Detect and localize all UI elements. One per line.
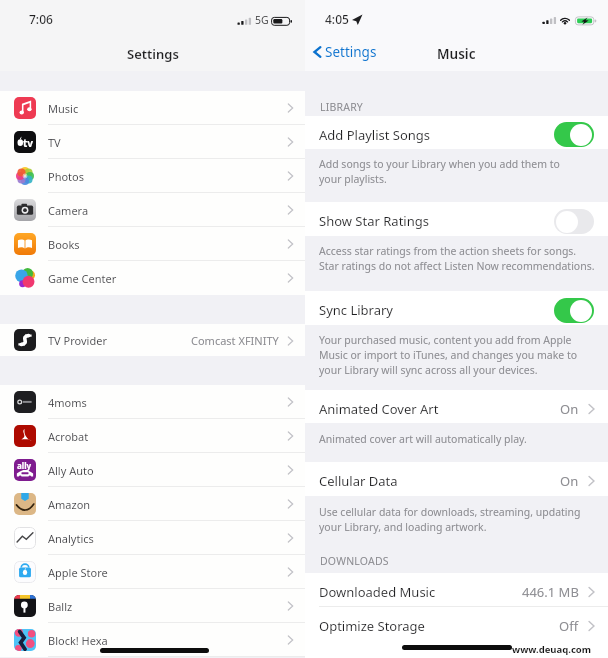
staticText: ally	[17, 460, 32, 471]
button[interactable]: TV Provider	[0, 324, 305, 356]
button[interactable]: Photos	[0, 159, 305, 193]
button[interactable]: Sync Library	[305, 291, 608, 325]
staticText: Music	[437, 45, 476, 63]
staticText: Sync Library	[319, 301, 393, 319]
button[interactable]: Switch on	[554, 122, 594, 147]
staticText: Off	[559, 617, 579, 635]
staticText: Acrobat	[48, 429, 89, 444]
staticText: tv	[23, 136, 34, 150]
staticText: Ballz	[48, 599, 73, 614]
button[interactable]: Downloaded Music	[305, 573, 608, 607]
button[interactable]: Game Center	[0, 261, 305, 295]
staticText: Analytics	[48, 531, 94, 546]
button[interactable]: Ballz	[0, 589, 305, 623]
staticText: Amazon	[48, 497, 91, 512]
staticText: Game Center	[48, 271, 117, 286]
staticText: TV	[48, 135, 61, 150]
button[interactable]: ally	[0, 453, 305, 487]
staticText: Animated cover art will automatically pl…	[319, 432, 604, 446]
staticText: LIBRARY	[320, 100, 364, 114]
staticText: Apple Store	[48, 565, 108, 580]
staticText: Photos	[48, 169, 85, 184]
staticText: Books	[48, 237, 80, 252]
button[interactable]: Settings	[313, 43, 377, 61]
button[interactable]: Switch on	[554, 298, 594, 323]
staticText: 446.1 MB	[522, 583, 579, 601]
button[interactable]: 4moms	[0, 385, 305, 419]
staticText: Settings	[127, 45, 179, 63]
staticText: 4:05	[325, 11, 349, 27]
staticText: Cellular Data	[319, 472, 398, 490]
staticText: On	[560, 400, 579, 418]
button[interactable]: Optimize Storage	[305, 607, 608, 641]
button[interactable]: Books	[0, 227, 305, 261]
staticText: On	[560, 472, 579, 490]
staticText: Optimize Storage	[319, 617, 425, 635]
staticText: Block! Hexa	[48, 633, 108, 648]
button[interactable]: tv	[0, 125, 305, 159]
button[interactable]: Amazon	[0, 487, 305, 521]
staticText: Use cellular data for downloads, streami…	[319, 505, 604, 534]
button[interactable]: Block! Hexa	[0, 623, 305, 657]
button[interactable]: Show Star Ratings	[305, 202, 608, 236]
staticText: Settings	[325, 43, 377, 61]
staticText: Music	[48, 101, 79, 116]
staticText: Add Playlist Songs	[319, 126, 431, 144]
staticText: TV Provider	[48, 333, 107, 348]
staticText: Comcast XFINITY	[191, 333, 279, 348]
button[interactable]: Add Playlist Songs	[305, 116, 608, 149]
staticText: 4moms	[48, 395, 87, 410]
button[interactable]: Apple Store	[0, 555, 305, 589]
button[interactable]: Acrobat	[0, 419, 305, 453]
button[interactable]: Cellular Data	[305, 462, 608, 496]
staticText: 7:06	[29, 11, 53, 27]
staticText: www.deuaq.com	[512, 643, 592, 656]
staticText: 5G	[255, 13, 269, 27]
staticText: Your purchased music, content you add fr…	[319, 333, 604, 377]
button[interactable]: Switch off	[554, 209, 594, 234]
button[interactable]: Music	[0, 91, 305, 125]
button[interactable]: Animated Cover Art	[305, 390, 608, 423]
staticText: Camera	[48, 203, 89, 218]
staticText: Add songs to your Library when you add t…	[319, 157, 604, 186]
staticText: Access star ratings from the action shee…	[319, 244, 604, 273]
staticText: Ally Auto	[48, 463, 94, 478]
staticText: Animated Cover Art	[319, 400, 439, 418]
staticText: Show Star Ratings	[319, 212, 429, 230]
staticText: Downloaded Music	[319, 583, 436, 601]
button[interactable]: Analytics	[0, 521, 305, 555]
staticText: DOWNLOADS	[320, 554, 389, 568]
button[interactable]: Camera	[0, 193, 305, 227]
